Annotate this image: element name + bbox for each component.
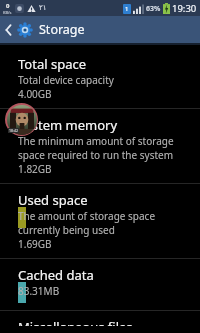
staticText: System memory [18,116,118,134]
button[interactable]: Miscellaneous files [0,311,200,333]
staticText: Storage [39,21,85,38]
staticText: 18:42 [9,128,18,133]
staticText: Total device capacity [18,73,114,87]
button[interactable]: Total space [0,45,200,109]
staticText: 83.31MB [18,284,60,298]
staticText: currently being used [18,223,115,237]
staticText: Total space [18,55,86,73]
staticText: 1.69GB [18,237,52,251]
staticText: 1 [125,5,129,13]
staticText: The amount of storage space [18,209,156,223]
staticText: Cached data [18,266,94,284]
staticText: ٢١ [39,4,47,12]
button[interactable]: Cached data [0,259,200,311]
staticText: space required to run the system [18,148,174,162]
staticText: 1.82GB [18,162,52,176]
button[interactable]: System memory [0,109,200,184]
staticText: KB/s [3,10,12,15]
button[interactable]: Used space [0,184,200,259]
button[interactable]: Navigate up [0,16,17,43]
staticText: Miscellaneous files [18,318,133,326]
staticText: 4.00GB [18,87,52,101]
staticText: The minimum amount of storage [18,134,174,148]
staticText: Used space [18,191,88,209]
staticText: 0 [6,2,10,10]
button[interactable]: Contact photo [5,103,38,136]
staticText: 63% [146,4,161,14]
staticText: 19:30 [172,2,197,15]
